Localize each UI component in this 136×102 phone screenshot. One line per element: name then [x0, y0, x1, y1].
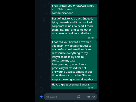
- button[interactable]: Attach: [86, 93, 92, 100]
- button[interactable]: Message: [43, 93, 76, 100]
- button[interactable]: Meta AI: [38, 92, 45, 99]
- button[interactable]: Emoji: [76, 93, 82, 100]
- button[interactable]: Camera: [91, 93, 98, 100]
- button[interactable]: Best of luck to you guys. Indeed, lying …: [50, 17, 97, 40]
- button[interactable]: I noticed you haven't answered, yet agai…: [50, 40, 97, 81]
- button[interactable]: Shall I recall you WhatsApp is not an of…: [50, 4, 97, 16]
- button[interactable]: Have a great evening, Sandra.: [50, 83, 97, 90]
